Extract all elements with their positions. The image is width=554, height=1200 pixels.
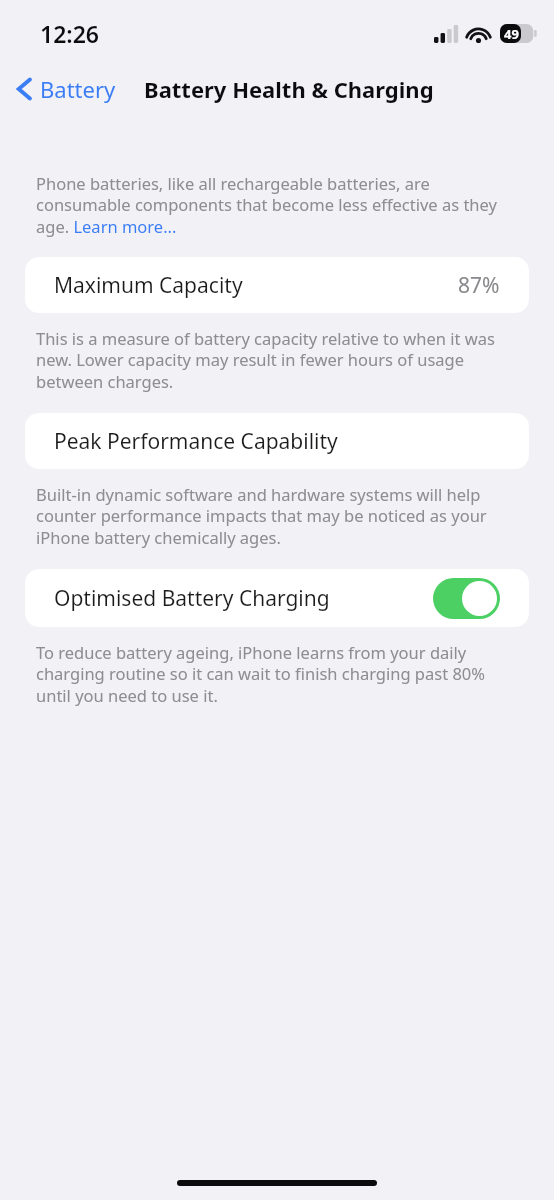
- staticText: 12:26: [40, 18, 99, 49]
- staticText: Optimised Battery Charging: [54, 584, 433, 613]
- button[interactable]: Peak Performance Capability: [25, 413, 529, 469]
- staticText: Battery: [40, 74, 116, 104]
- staticText: Maximum Capacity: [54, 271, 458, 300]
- button[interactable]: Battery: [0, 70, 124, 108]
- staticText: Built-in dynamic software and hardware s…: [36, 483, 514, 549]
- button[interactable]: Optimised Battery Charging: [25, 569, 529, 627]
- staticText: Battery Health & Charging: [144, 74, 434, 104]
- staticText: To reduce battery ageing, iPhone learns …: [36, 641, 514, 707]
- staticText: Phone batteries, like all rechargeable b…: [36, 172, 514, 238]
- staticText: Peak Performance Capability: [54, 427, 500, 456]
- staticText: This is a measure of battery capacity re…: [36, 327, 514, 393]
- button[interactable]: Maximum Capacity: [25, 257, 529, 313]
- button[interactable]: Optimised Battery Charging toggle, on: [433, 578, 500, 619]
- staticText: 49: [504, 25, 519, 43]
- staticText: 87%: [458, 271, 500, 300]
